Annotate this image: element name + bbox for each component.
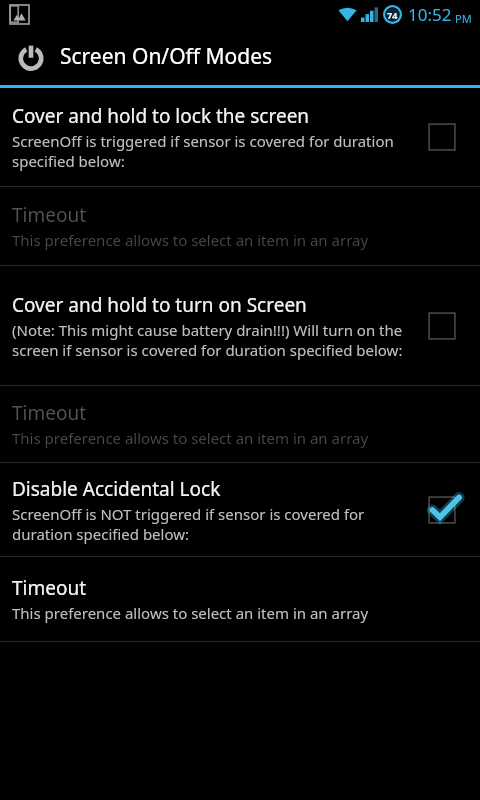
staticText: (Note: This might cause battery drain!!!… (12, 320, 406, 360)
button[interactable]: Timeout (0, 386, 480, 462)
staticText: 10:52 (408, 3, 452, 26)
staticText: Timeout (12, 202, 87, 228)
staticText: ScreenOff is NOT triggered if sensor is … (12, 504, 406, 544)
staticText: This preference allows to select an item… (12, 230, 369, 250)
staticText: ScreenOff is triggered if sensor is cove… (12, 131, 406, 171)
staticText: Cover and hold to turn on Screen (12, 292, 307, 318)
staticText: Screen On/Off Modes (60, 42, 273, 71)
staticText: Timeout (12, 575, 87, 601)
staticText: This preference allows to select an item… (12, 428, 369, 448)
button[interactable]: Cover and hold to lock the screen (0, 88, 480, 186)
staticText: This preference allows to select an item… (12, 603, 369, 623)
staticText: 74 (387, 9, 398, 21)
staticText: Disable Accidental Lock (12, 476, 221, 502)
staticText: Cover and hold to lock the screen (12, 103, 310, 129)
button[interactable]: Cover and hold to turn on Screen (0, 266, 480, 385)
button[interactable]: Unchecked toggle (414, 109, 470, 165)
button[interactable]: Disable Accidental Lock (0, 463, 480, 556)
staticText: PM (455, 11, 472, 26)
button[interactable]: Timeout (0, 557, 480, 641)
button[interactable]: Unchecked toggle (414, 298, 470, 354)
staticText: Timeout (12, 400, 87, 426)
button[interactable]: Timeout (0, 187, 480, 265)
button[interactable]: Checked toggle (414, 482, 470, 538)
